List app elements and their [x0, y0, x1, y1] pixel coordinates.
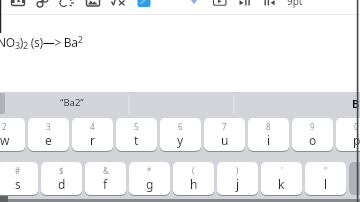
staticText: 8 [266, 121, 271, 132]
staticText: B [352, 96, 360, 111]
staticText: * [147, 165, 152, 176]
staticText: 0 [354, 121, 359, 132]
staticText: p [353, 132, 360, 148]
button[interactable]: 4 [72, 118, 113, 151]
button[interactable]: ) [217, 162, 258, 195]
staticText: ( [192, 165, 195, 176]
button[interactable]: “Ba2” [60, 96, 84, 109]
staticText: 5 [134, 121, 139, 132]
staticText: # [15, 165, 21, 176]
staticText: r [90, 132, 95, 148]
staticText: 7 [222, 121, 227, 132]
staticText: o [309, 132, 317, 148]
staticText: 6 [178, 121, 183, 132]
button[interactable]: " [305, 162, 346, 195]
button[interactable]: 7 [204, 118, 245, 151]
staticText: $ [59, 165, 64, 176]
staticText: f [103, 176, 108, 192]
staticText: t [134, 132, 139, 148]
staticText: l [324, 176, 328, 192]
button[interactable]: 8 [248, 118, 289, 151]
button[interactable]: ( [173, 162, 214, 195]
staticText: i [267, 132, 271, 148]
staticText: 9pt [287, 0, 303, 8]
staticText: g [146, 176, 154, 192]
staticText: 2 [2, 121, 7, 132]
staticText: 4 [90, 121, 95, 132]
button[interactable]: & [85, 162, 126, 195]
staticText: e [45, 132, 52, 148]
staticText: k [278, 176, 285, 192]
button[interactable]: * [129, 162, 170, 195]
staticText: 3 [46, 121, 51, 132]
staticText: j [236, 176, 240, 192]
button[interactable]: 6 [160, 118, 201, 151]
staticText: s [15, 176, 21, 192]
button[interactable]: 0 [336, 118, 360, 151]
staticText: u [221, 132, 229, 148]
staticText: ' [281, 165, 283, 176]
button[interactable]: $ [41, 162, 82, 195]
staticText: d [58, 176, 66, 192]
staticText: 9 [310, 121, 315, 132]
button[interactable]: # [0, 162, 38, 195]
button[interactable]: ' [261, 162, 302, 195]
button[interactable]: 5 [116, 118, 157, 151]
staticText: h [190, 176, 198, 192]
button[interactable]: 3 [28, 118, 69, 151]
staticText: y [177, 132, 184, 148]
staticText: & [103, 165, 109, 176]
button[interactable]: 9 [292, 118, 333, 151]
staticText: " [324, 165, 328, 176]
button[interactable]: 2 [0, 118, 25, 151]
staticText: ) [236, 165, 239, 176]
staticText: w [0, 132, 10, 148]
staticText: NO3)2 (s)—> Ba2 [0, 33, 83, 52]
